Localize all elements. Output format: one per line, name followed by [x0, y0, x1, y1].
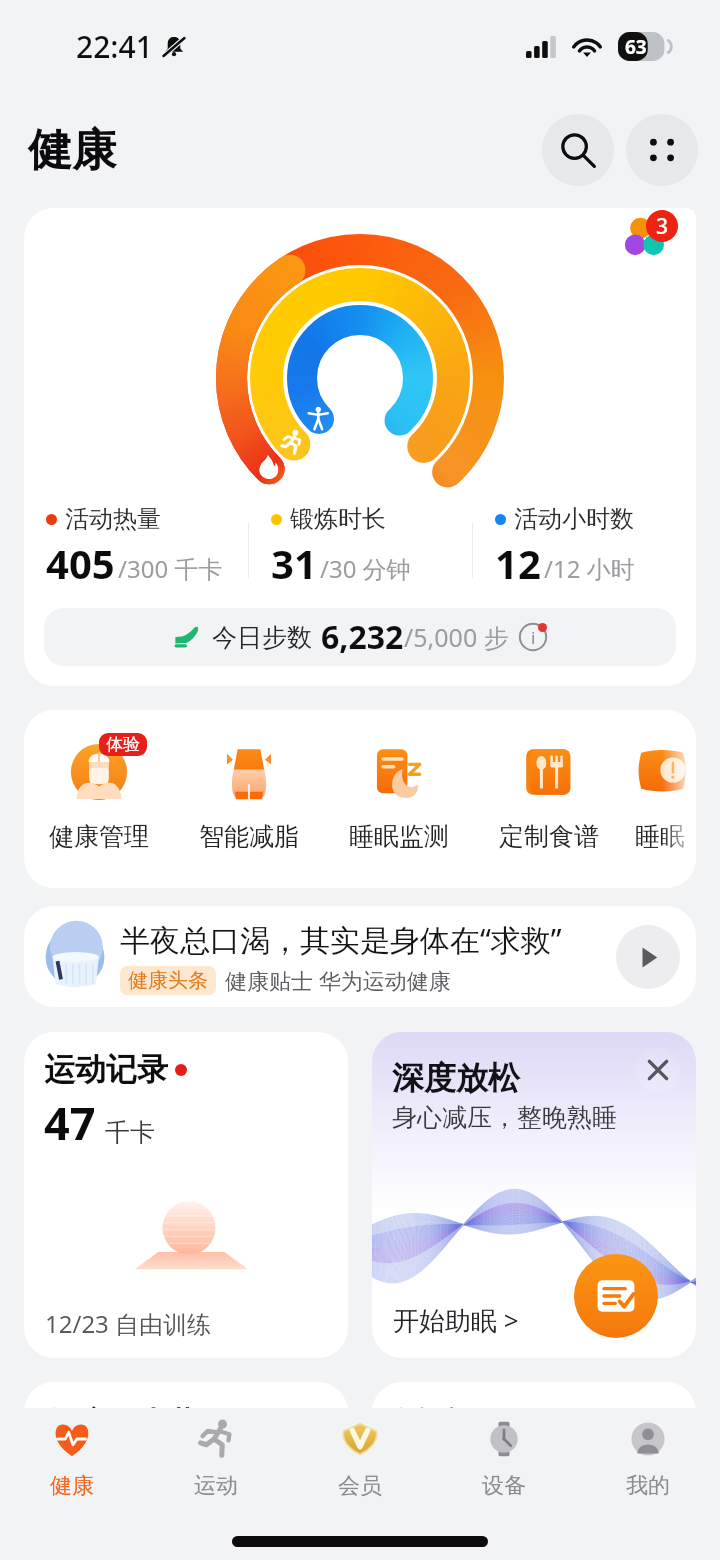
staticText: 千卡 — [105, 1117, 155, 1148]
staticText: 运动记录 — [44, 1050, 168, 1089]
button[interactable] — [24, 208, 696, 686]
staticText: 健康头条 — [128, 968, 208, 993]
staticText: 半夜总口渴，其实是身体在“求救” — [120, 919, 562, 960]
button[interactable]: 睡眠 — [624, 728, 696, 852]
button[interactable]: 活跃 — [372, 1382, 696, 1502]
button[interactable]: 运动 — [144, 1415, 288, 1500]
staticText: 体验 — [106, 734, 140, 755]
staticText: 定制食谱 — [499, 821, 599, 852]
button[interactable]: 会员 — [288, 1415, 432, 1500]
button[interactable]: 健康三大黄 — [24, 1382, 348, 1502]
button[interactable]: Health services — [600, 208, 696, 264]
staticText: 3 — [656, 212, 669, 241]
staticText: 运动 — [194, 1472, 238, 1500]
button[interactable]: 睡眠监测 — [324, 728, 474, 852]
button[interactable]: 今日步数 — [44, 608, 676, 666]
staticText: 今日步数 — [212, 622, 312, 653]
staticText: 智能减脂 — [199, 821, 299, 852]
staticText: 47 — [44, 1092, 96, 1153]
button[interactable]: 定制食谱 — [474, 728, 624, 852]
staticText: 12/23 自由训练 — [45, 1307, 212, 1340]
staticText: 22:41 — [76, 26, 153, 67]
button[interactable]: 深度放松 — [372, 1032, 696, 1358]
staticText: 锻炼时长 — [290, 504, 386, 534]
staticText: 活动热量 — [65, 504, 161, 534]
staticText: /5,000 步 — [404, 620, 509, 654]
staticText: 健康三大黄 — [48, 1404, 198, 1442]
staticText: /300 千卡 — [118, 552, 223, 585]
staticText: 健康 — [28, 123, 116, 178]
staticText: 我的 — [626, 1472, 670, 1500]
staticText: 开始助眠 > — [393, 1302, 519, 1338]
staticText: i — [531, 626, 536, 649]
staticText: 6,232 — [321, 615, 404, 659]
button[interactable]: Play — [616, 925, 680, 989]
staticText: 会员 — [338, 1472, 382, 1500]
staticText: 睡眠 — [635, 821, 685, 852]
staticText: 31 — [271, 536, 317, 590]
button[interactable]: 设备 — [432, 1415, 576, 1500]
staticText: 睡眠监测 — [349, 821, 449, 852]
staticText: /12 小时 — [544, 552, 635, 585]
staticText: /30 分钟 — [320, 552, 411, 585]
staticText: 健康管理 — [49, 821, 149, 852]
staticText: 健康 — [50, 1472, 94, 1500]
staticText: 活跃 — [396, 1404, 456, 1442]
staticText: 12 — [495, 536, 541, 590]
staticText: 设备 — [482, 1472, 526, 1500]
button[interactable]: 体验 — [24, 728, 174, 852]
staticText: 405 — [46, 536, 115, 590]
button[interactable]: Close — [636, 1048, 680, 1092]
button[interactable]: 我的 — [576, 1415, 720, 1500]
staticText: 深度放松 — [392, 1058, 520, 1098]
button[interactable]: 智能减脂 — [174, 728, 324, 852]
button[interactable]: More options — [626, 114, 698, 186]
button[interactable]: Search — [542, 114, 614, 186]
staticText: 活动小时数 — [514, 504, 634, 534]
button[interactable]: 半夜总口渴，其实是身体在“求救” — [24, 906, 696, 1007]
button[interactable]: 运动记录 — [24, 1032, 348, 1358]
button[interactable]: Start sleep aid — [574, 1254, 658, 1338]
button[interactable]: 健康 — [0, 1415, 144, 1500]
staticText: 健康贴士 华为运动健康 — [225, 965, 451, 995]
staticText: 63 — [625, 34, 647, 60]
staticText: 身心减压，整晚熟睡 — [392, 1102, 617, 1133]
